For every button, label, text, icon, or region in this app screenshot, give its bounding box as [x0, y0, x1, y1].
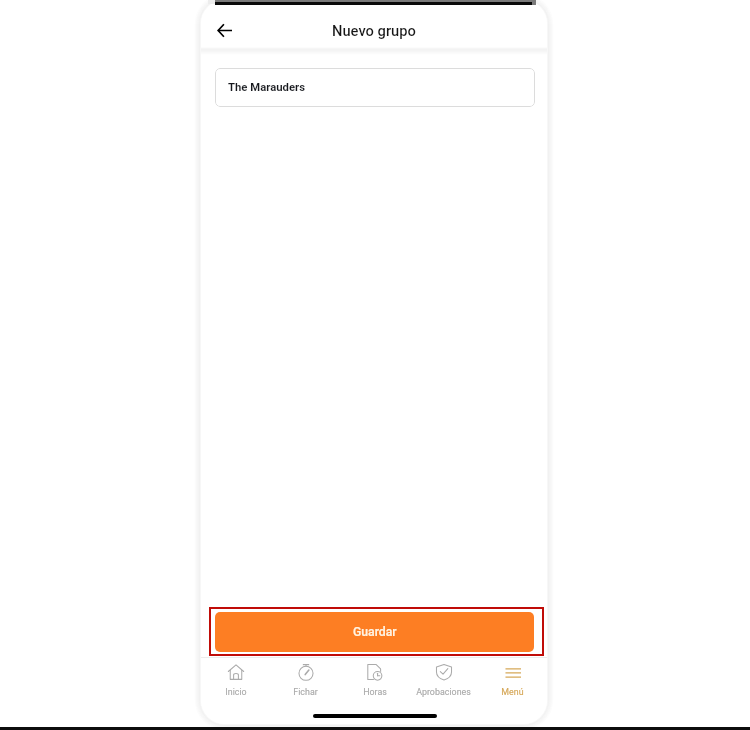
button[interactable]: Atrás: [210, 16, 238, 44]
button[interactable]: Aprobaciones: [409, 658, 478, 700]
staticText: Aprobaciones: [416, 687, 471, 697]
button[interactable]: Inicio: [201, 658, 271, 700]
staticText: Horas: [363, 687, 387, 697]
button[interactable]: Guardar: [215, 612, 534, 652]
staticText: Fichar: [293, 687, 318, 697]
button[interactable]: The Marauders: [215, 68, 535, 107]
button[interactable]: Horas: [340, 658, 409, 700]
button[interactable]: Menú: [478, 658, 547, 700]
button[interactable]: Fichar: [271, 658, 340, 700]
staticText: Nuevo grupo: [332, 22, 416, 39]
staticText: Guardar: [353, 625, 397, 639]
staticText: The Marauders: [228, 81, 305, 94]
staticText: Inicio: [225, 687, 247, 697]
staticText: Menú: [501, 687, 524, 697]
